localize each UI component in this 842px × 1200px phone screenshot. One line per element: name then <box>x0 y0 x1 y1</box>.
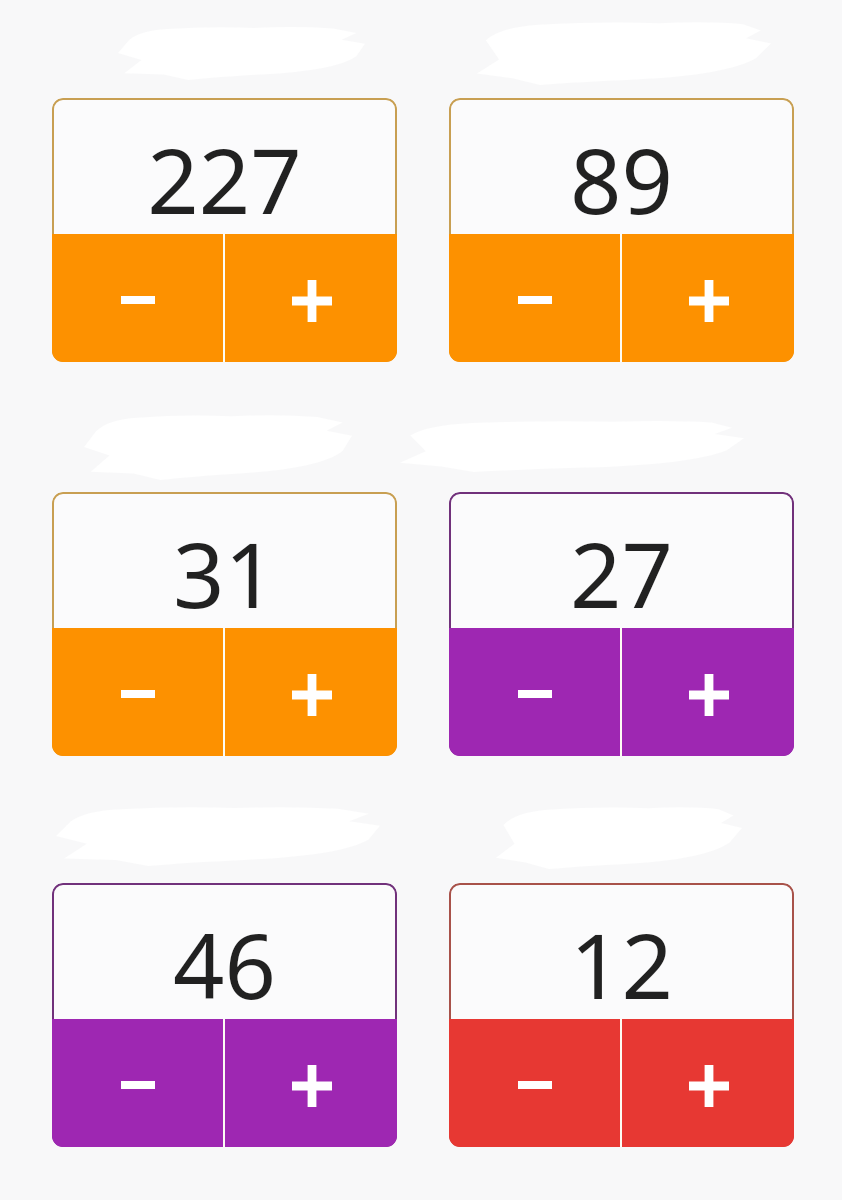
button[interactable]: Decrease 89 <box>449 234 620 362</box>
staticText: 31 <box>173 512 276 635</box>
button[interactable]: Increase 227 <box>225 234 397 362</box>
staticText: 227 <box>147 118 302 241</box>
staticText: 46 <box>173 903 276 1026</box>
button[interactable]: Increase 27 <box>622 628 794 756</box>
button[interactable]: Decrease 227 <box>52 234 223 362</box>
staticText: 27 <box>570 512 673 635</box>
button[interactable]: Decrease 27 <box>449 628 620 756</box>
button[interactable]: Decrease 31 <box>52 628 223 756</box>
button[interactable]: Increase 46 <box>225 1019 397 1147</box>
staticText: 12 <box>570 903 673 1026</box>
button[interactable]: Decrease 46 <box>52 1019 223 1147</box>
button[interactable]: Increase 89 <box>622 234 794 362</box>
staticText: 89 <box>570 118 673 241</box>
button[interactable]: Increase 31 <box>225 628 397 756</box>
button[interactable]: Decrease 12 <box>449 1019 620 1147</box>
button[interactable]: Increase 12 <box>622 1019 794 1147</box>
